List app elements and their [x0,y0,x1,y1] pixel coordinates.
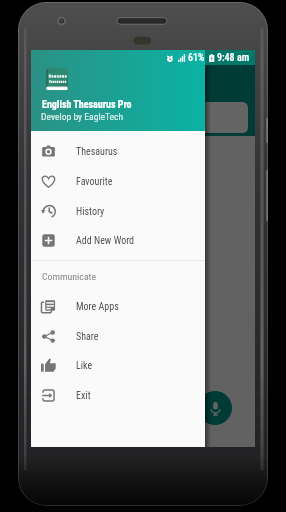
button[interactable]: Voice search [198,391,232,425]
staticText: Thesaurus [76,146,118,158]
button[interactable]: Thesaurus [31,136,205,166]
staticText: Favourite [76,176,113,188]
button[interactable] [47,102,248,133]
staticText: History [76,206,105,218]
staticText: Communicate [42,271,97,283]
button[interactable]: Exit [31,380,205,410]
button[interactable]: Like [31,350,205,380]
staticText: English Thesaurus Pro [42,99,132,111]
staticText: Develop by EagleTech [41,111,124,122]
staticText: Add New Word [76,235,135,247]
staticText: Like [76,360,93,372]
staticText: Share [76,331,99,343]
button[interactable]: Share [31,321,205,351]
staticText: 9:48 am [217,52,250,64]
staticText: 61% [188,52,205,64]
button[interactable]: Favourite [31,166,205,196]
staticText: More Apps [76,301,119,313]
staticText: Exit [76,390,91,402]
button[interactable]: Add New Word [31,225,205,255]
button[interactable]: History [31,196,205,226]
button[interactable]: More Apps [31,291,205,321]
